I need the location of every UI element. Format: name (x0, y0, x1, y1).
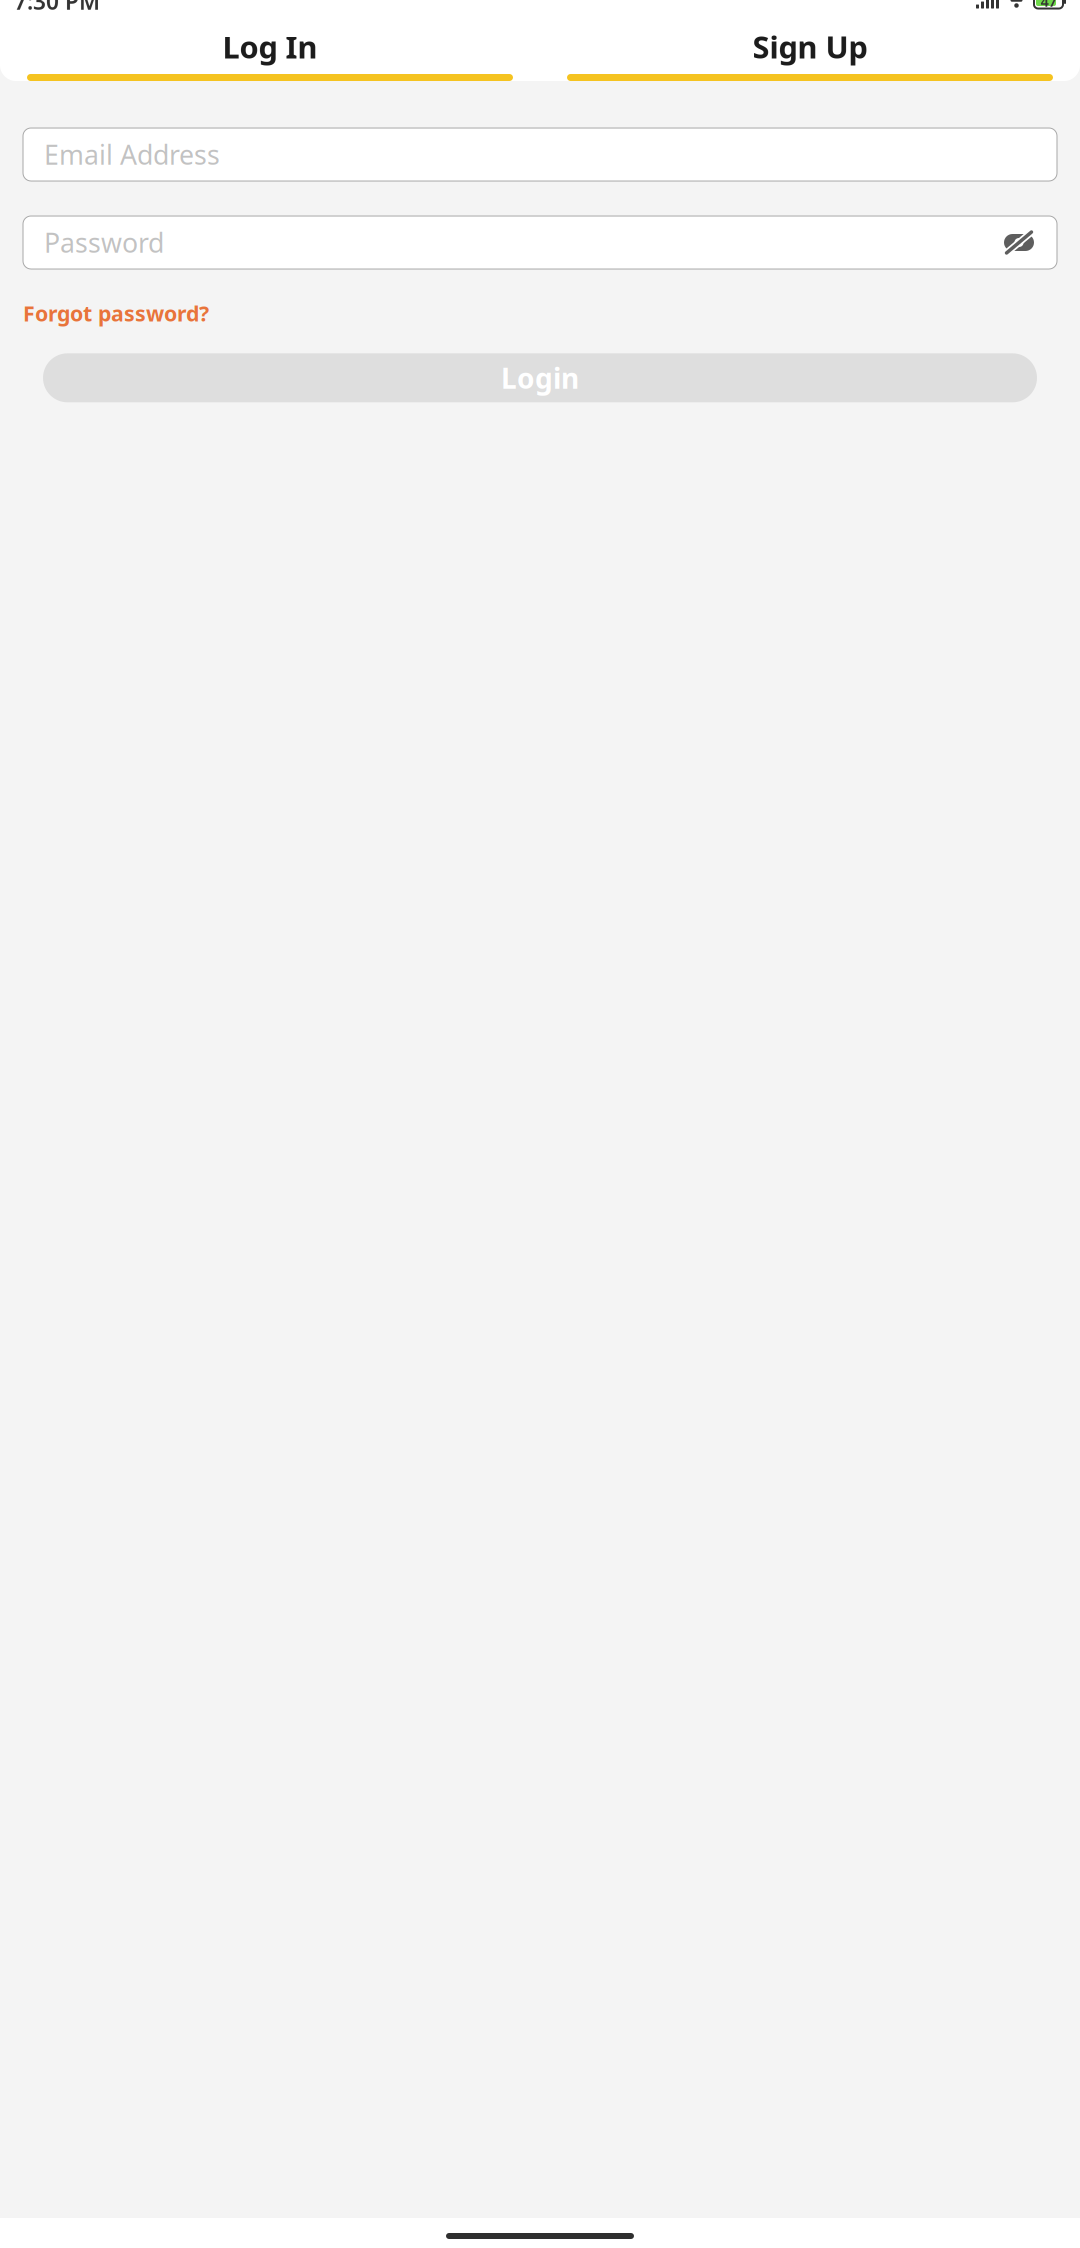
button[interactable]: Forgot password? (23, 295, 209, 331)
staticText: Password (44, 225, 164, 260)
staticText: Sign Up (752, 26, 867, 67)
staticText: Login (501, 359, 579, 396)
button[interactable]: Show password (1002, 227, 1036, 257)
button[interactable]: Sign Up (540, 18, 1080, 81)
button[interactable]: Log In (0, 18, 540, 81)
staticText: 47 (1040, 0, 1056, 11)
staticText: Email Address (44, 137, 220, 172)
staticText: Log In (222, 26, 317, 67)
staticText: 7:30 PM (14, 0, 100, 16)
button[interactable]: Login (43, 353, 1037, 402)
staticText: Forgot password? (23, 299, 209, 327)
